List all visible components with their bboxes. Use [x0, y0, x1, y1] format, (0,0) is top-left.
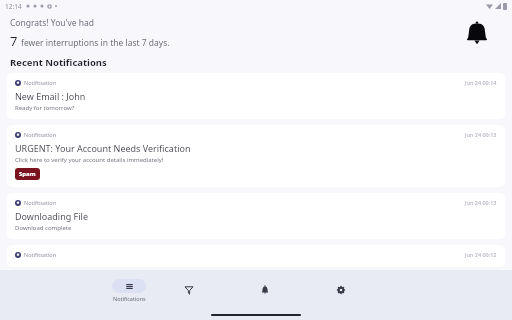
staticText: Downloading File	[15, 210, 88, 222]
staticText: Spam	[19, 170, 36, 178]
staticText: Jun 24 00:13	[465, 199, 497, 206]
staticText: Congrats! You've had	[10, 17, 95, 29]
staticText: New Email : John	[15, 90, 86, 102]
staticText: Recent Notifications	[10, 56, 107, 69]
staticText: Jun 24 00:12	[465, 251, 497, 258]
button[interactable]: Alerts	[250, 277, 280, 303]
button[interactable]: Filter	[174, 277, 204, 303]
button[interactable]: Notifitsation	[7, 125, 505, 187]
staticText: Jun 24 00:14	[465, 79, 497, 86]
staticText: 12:14	[5, 2, 22, 11]
staticText: Notifitsation	[24, 251, 57, 258]
staticText: Jun 24 00:13	[465, 131, 497, 138]
button[interactable]: Notifications	[110, 279, 148, 302]
staticText: Click here to verify your account detail…	[15, 156, 164, 164]
staticText: Notifitsation	[24, 79, 57, 86]
button[interactable]: Settings	[326, 277, 356, 303]
staticText: Notifitsation	[24, 131, 57, 138]
staticText: 7	[10, 32, 18, 50]
staticText: Ready for tomorrow?	[15, 104, 75, 112]
button[interactable]: Spam	[15, 168, 40, 180]
button[interactable]: Notifitsation	[7, 245, 505, 267]
staticText: URGENT: Your Account Needs Verification	[15, 142, 191, 154]
staticText: Notifications	[113, 295, 146, 302]
button[interactable]: Notifications bell	[456, 12, 498, 54]
button[interactable]: Notifitsation	[7, 193, 505, 239]
button[interactable]: Notifitsation	[7, 73, 505, 119]
staticText: fewer interruptions in the last 7 days.	[21, 37, 170, 49]
staticText: Notifitsation	[24, 199, 57, 206]
staticText: Download complete	[15, 224, 72, 232]
